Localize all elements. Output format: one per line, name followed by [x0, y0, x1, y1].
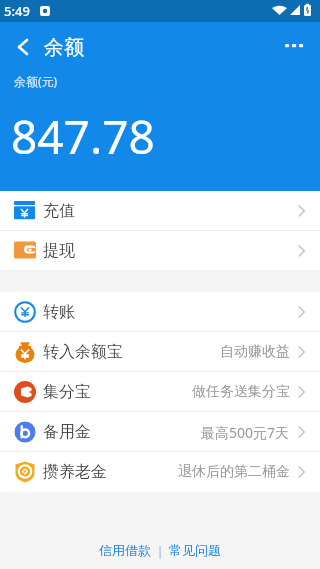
staticText: | [153, 542, 167, 560]
staticText: 5:49 [4, 2, 30, 20]
staticText: 转入余额宝 [43, 342, 123, 362]
staticText: 提现 [43, 241, 75, 261]
button[interactable]: 转入余额宝 [0, 332, 320, 372]
staticText: 做任务送集分宝 [192, 383, 290, 401]
button[interactable]: 提现 [0, 231, 320, 271]
staticText: 常见问题 [169, 542, 221, 558]
staticText: 自动赚收益 [220, 343, 290, 361]
staticText: 攒养老金 [43, 462, 107, 482]
staticText: 余额(元) [14, 73, 58, 89]
button[interactable]: 备用金 [0, 412, 320, 452]
staticText: 集分宝 [43, 382, 91, 402]
staticText: 备用金 [43, 422, 91, 442]
staticText: 847.78 [11, 105, 155, 168]
button[interactable]: 转账 [0, 292, 320, 332]
button[interactable]: 充值 [0, 191, 320, 231]
staticText: 最高500元7天 [201, 423, 290, 442]
staticText: 转账 [43, 302, 75, 322]
staticText: 信用借款 [99, 542, 151, 558]
button[interactable] [280, 34, 312, 58]
staticText: 余额 [44, 35, 84, 60]
staticText: 充值 [43, 201, 75, 221]
staticText: 退休后的第二桶金 [178, 463, 290, 481]
button[interactable] [8, 32, 38, 62]
button[interactable]: 常见问题 [169, 542, 221, 558]
button[interactable]: 集分宝 [0, 372, 320, 412]
button[interactable]: 攒养老金 [0, 452, 320, 492]
button[interactable]: 信用借款 [99, 542, 151, 558]
